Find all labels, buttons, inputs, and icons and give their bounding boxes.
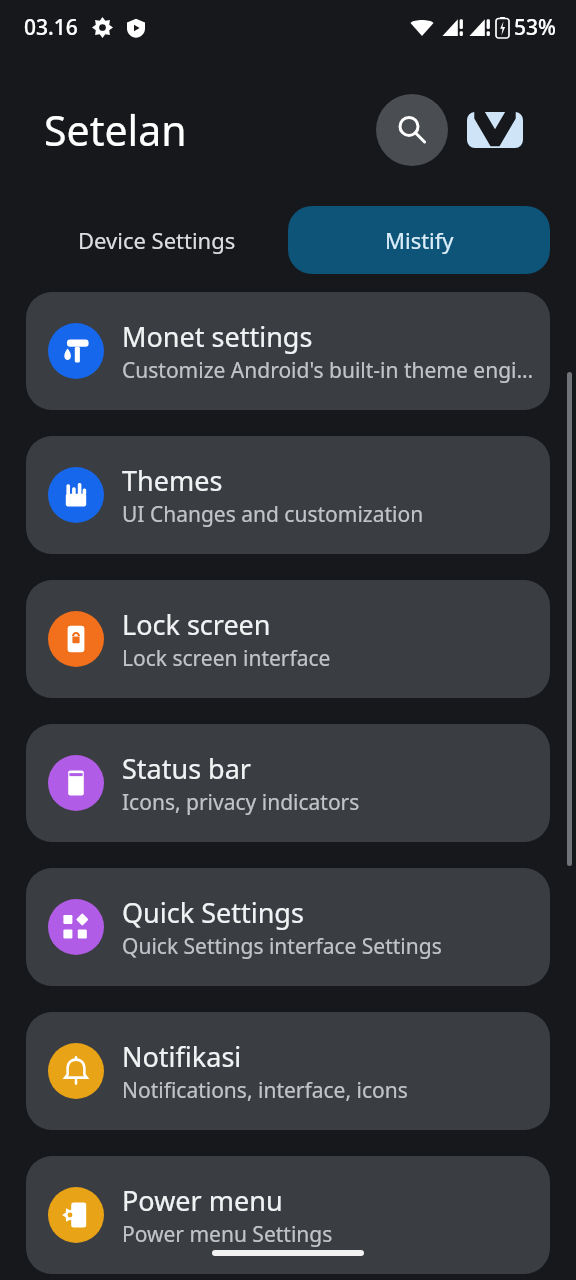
staticText: UI Changes and customization	[122, 500, 424, 529]
staticText: Monet settings	[122, 318, 313, 355]
staticText: Notifikasi	[122, 1038, 242, 1075]
button[interactable]: Themes	[26, 436, 550, 554]
staticText: Lock screen interface	[122, 644, 331, 673]
staticText: Power menu	[122, 1182, 283, 1219]
staticText: Customize Android's built-in theme engin…	[122, 356, 534, 385]
button[interactable]: Lock screen	[26, 580, 550, 698]
button[interactable]: Device Settings	[26, 206, 288, 274]
staticText: Lock screen	[122, 606, 271, 643]
staticText: Status bar	[122, 750, 252, 787]
staticText: Mistify	[385, 225, 454, 255]
button[interactable]: Search	[376, 94, 448, 166]
button[interactable]: Mistify app	[464, 99, 526, 161]
button[interactable]: Quick Settings	[26, 868, 550, 986]
button[interactable]: Status bar	[26, 724, 550, 842]
button[interactable]: Monet settings	[26, 292, 550, 410]
staticText: Setelan	[44, 102, 187, 158]
button[interactable]: Notifikasi	[26, 1012, 550, 1130]
staticText: Themes	[122, 462, 223, 499]
staticText: Notifications, interface, icons	[122, 1076, 408, 1105]
staticText: Device Settings	[78, 225, 236, 255]
staticText: Quick Settings interface Settings	[122, 932, 442, 961]
staticText: Quick Settings	[122, 894, 304, 931]
button[interactable]: Power menu	[26, 1156, 550, 1274]
staticText: Power menu Settings	[122, 1220, 333, 1249]
staticText: 03.16	[24, 13, 78, 42]
staticText: Icons, privacy indicators	[122, 788, 360, 817]
staticText: 53%	[514, 13, 556, 42]
button[interactable]: Mistify	[288, 206, 550, 274]
